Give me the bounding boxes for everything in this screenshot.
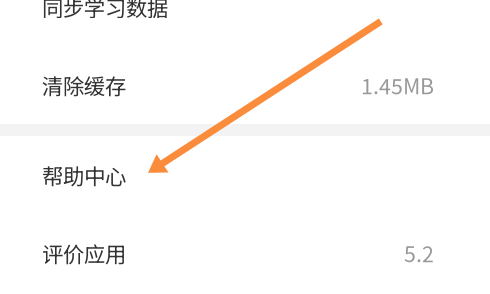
button[interactable]: 评价应用 bbox=[0, 214, 490, 292]
staticText: 帮助中心 bbox=[42, 160, 126, 190]
staticText: 同步学习数据 bbox=[42, 0, 168, 22]
button[interactable]: 帮助中心 bbox=[0, 136, 490, 214]
staticText: 5.2 bbox=[404, 238, 434, 268]
staticText: 评价应用 bbox=[42, 238, 126, 268]
staticText: 清除缓存 bbox=[42, 70, 126, 100]
button[interactable]: 清除缓存 bbox=[0, 46, 490, 124]
staticText: 1.45MB bbox=[361, 70, 434, 100]
button[interactable]: 同步学习数据 bbox=[0, 0, 490, 46]
